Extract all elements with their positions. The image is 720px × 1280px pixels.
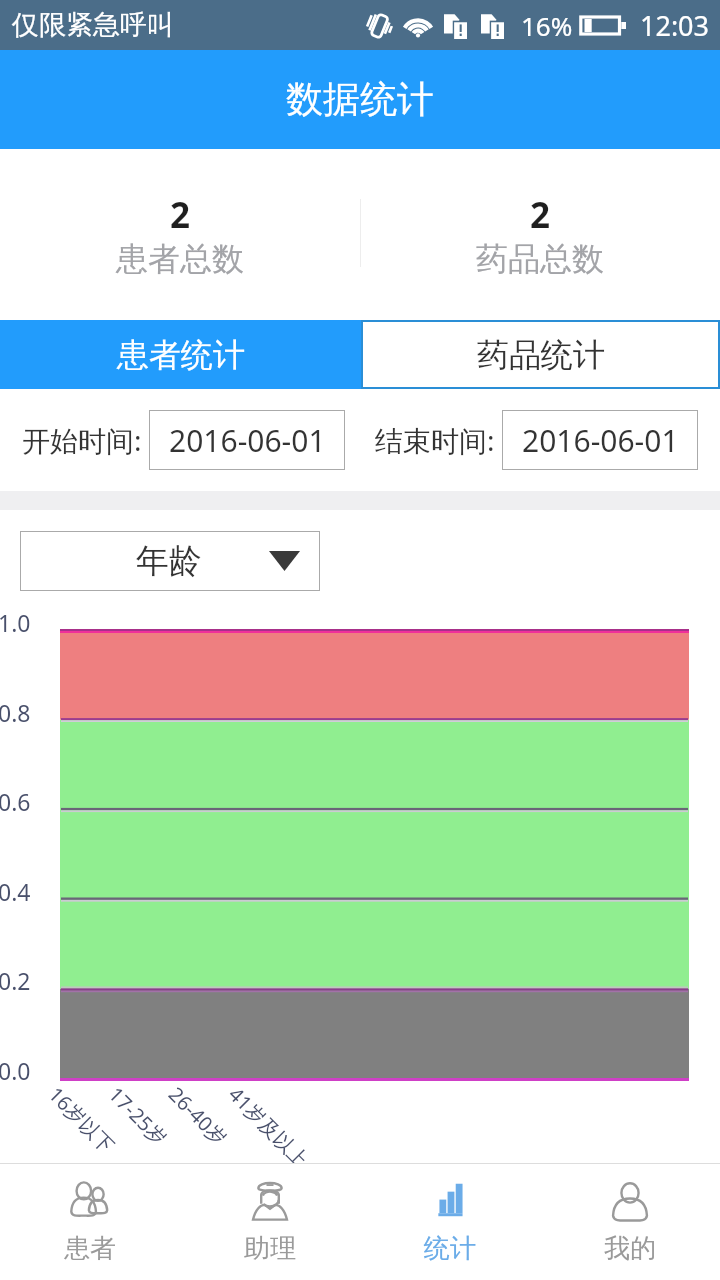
button[interactable]: 年龄 bbox=[20, 531, 320, 591]
staticText: 助理 bbox=[244, 1232, 296, 1265]
staticText: 结束时间: bbox=[375, 421, 495, 459]
button[interactable]: 2016-06-01 bbox=[149, 410, 345, 470]
button[interactable]: 统计 bbox=[360, 1164, 540, 1280]
other: 患者 bbox=[68, 1180, 112, 1224]
staticText: 2 bbox=[530, 191, 551, 239]
staticText: 16% bbox=[521, 8, 573, 43]
staticText: 我的 bbox=[604, 1232, 656, 1265]
button[interactable]: 2 bbox=[0, 149, 360, 320]
staticText: 12:03 bbox=[640, 7, 710, 44]
staticText: 2016-06-01 bbox=[169, 420, 326, 461]
button[interactable]: 我的 bbox=[540, 1164, 720, 1280]
staticText: 药品统计 bbox=[477, 335, 605, 375]
button[interactable]: 2 bbox=[360, 149, 720, 320]
staticText: 开始时间: bbox=[22, 421, 142, 459]
staticText: 统计 bbox=[424, 1232, 476, 1265]
button[interactable]: 助理 bbox=[180, 1164, 360, 1280]
other: 我的 bbox=[608, 1180, 652, 1224]
other: 助理 bbox=[248, 1180, 292, 1224]
other: 统计 bbox=[428, 1180, 472, 1224]
staticText: 数据统计 bbox=[286, 76, 434, 123]
button[interactable]: 患者 bbox=[0, 1164, 180, 1280]
button[interactable]: 患者统计 bbox=[0, 320, 361, 389]
staticText: 仅限紧急呼叫 bbox=[12, 8, 174, 42]
staticText: 年龄 bbox=[136, 540, 202, 582]
staticText: 2 bbox=[170, 191, 191, 239]
button[interactable]: 药品统计 bbox=[361, 320, 720, 389]
staticText: 患者总数 bbox=[116, 239, 244, 279]
staticText: 药品总数 bbox=[476, 239, 604, 279]
staticText: 患者 bbox=[64, 1232, 116, 1265]
staticText: 患者统计 bbox=[117, 335, 245, 375]
staticText: 2016-06-01 bbox=[522, 420, 679, 461]
button[interactable]: 2016-06-01 bbox=[502, 410, 698, 470]
